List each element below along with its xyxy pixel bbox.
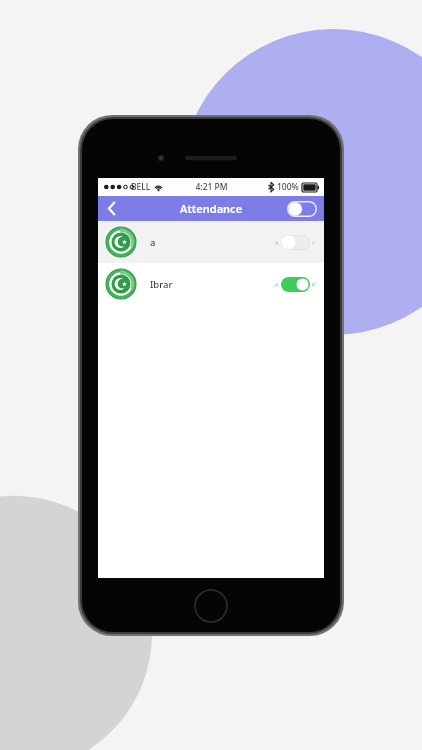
staticText: BELL — [131, 181, 151, 193]
staticText: A — [275, 239, 279, 246]
button[interactable]: Ibrar — [98, 263, 324, 305]
staticText: Ibrar — [150, 278, 173, 291]
button[interactable]: a — [98, 221, 324, 263]
staticText: P — [312, 239, 316, 246]
staticText: 4:21 PM — [195, 181, 228, 193]
staticText: a — [150, 236, 156, 249]
button[interactable]: a marked absent — [281, 235, 310, 250]
button[interactable]: Toggle all attendance — [287, 201, 317, 217]
staticText: P — [312, 281, 316, 288]
staticText: 100% — [277, 181, 299, 193]
button[interactable]: Ibrar marked present — [281, 277, 310, 292]
staticText: A — [275, 281, 279, 288]
button[interactable]: Back — [98, 196, 126, 221]
staticText: Attendance — [180, 201, 243, 216]
